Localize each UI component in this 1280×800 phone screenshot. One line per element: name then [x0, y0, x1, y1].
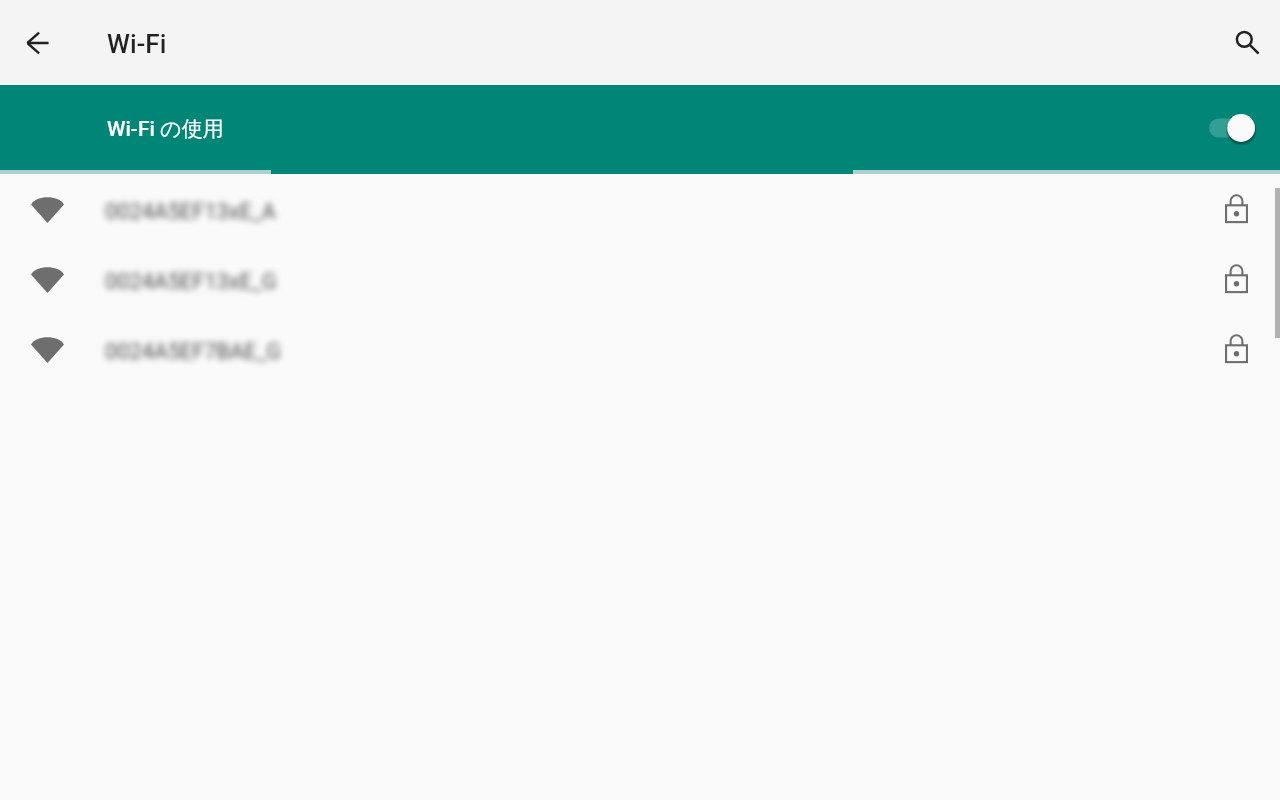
staticText: 0024A5EF13xE_G	[105, 269, 277, 294]
button[interactable]: Search	[1219, 14, 1275, 70]
button[interactable]: Use Wi-Fi, on	[1200, 104, 1264, 152]
button[interactable]: Navigate up	[10, 15, 66, 71]
button[interactable]: Wi-Fi の使用	[0, 85, 1280, 170]
staticText: Wi-Fi の使用	[107, 116, 224, 142]
staticText: 0024A5EF13xE_A	[105, 199, 276, 224]
staticText: Wi-Fi	[107, 29, 167, 59]
button[interactable]: 0024A5EF7BAE_G	[0, 314, 1280, 384]
button[interactable]: 0024A5EF13xE_G	[0, 244, 1280, 314]
staticText: 0024A5EF7BAE_G	[105, 339, 282, 364]
button[interactable]: 0024A5EF13xE_A	[0, 174, 1280, 244]
